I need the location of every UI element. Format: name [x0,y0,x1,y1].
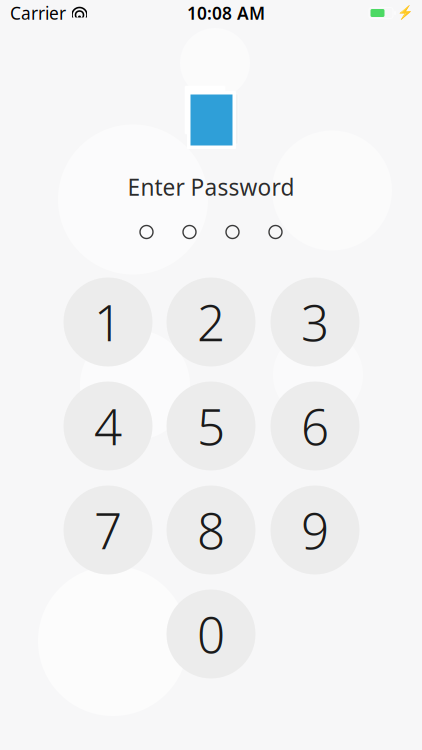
staticText: 4 [94,393,122,459]
staticText: ⚡ [397,5,414,20]
button[interactable]: 3 [270,277,359,366]
staticText: Carrier [10,1,66,24]
staticText: 3 [301,289,329,355]
button[interactable]: 1 [63,277,152,366]
staticText: 6 [301,393,329,459]
staticText: 10:08 AM [187,1,265,24]
button[interactable]: 4 [63,381,152,470]
staticText: 8 [197,497,225,563]
staticText: 9 [301,497,329,563]
staticText: 2 [197,289,225,355]
button[interactable]: 7 [63,485,152,574]
button[interactable]: 9 [270,485,359,574]
button[interactable]: 5 [166,381,255,470]
button[interactable]: 8 [166,485,255,574]
staticText: Enter Password [127,172,294,202]
button[interactable]: 2 [166,277,255,366]
staticText: 5 [197,393,225,459]
staticText: 7 [94,497,122,563]
button[interactable]: 6 [270,381,359,470]
staticText: 0 [197,601,225,667]
staticText: 1 [94,289,122,355]
button[interactable]: 0 [166,589,255,678]
